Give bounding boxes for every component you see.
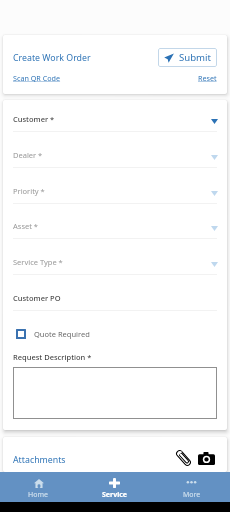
button[interactable]: Reset bbox=[198, 73, 217, 83]
button[interactable]: Submit bbox=[158, 48, 217, 67]
button[interactable]: Dealer * bbox=[13, 132, 217, 168]
button[interactable]: Customer PO bbox=[13, 275, 217, 311]
button[interactable]: Priority * bbox=[13, 168, 217, 204]
staticText: Service bbox=[102, 490, 128, 500]
button[interactable]: Attach file bbox=[175, 451, 191, 465]
button[interactable]: Home bbox=[0, 472, 76, 502]
staticText: Asset * bbox=[13, 221, 38, 231]
staticText: Customer * bbox=[13, 114, 55, 124]
button[interactable]: Service Type * bbox=[13, 239, 217, 275]
button[interactable] bbox=[13, 367, 217, 419]
button[interactable]: Customer * bbox=[13, 100, 217, 132]
staticText: More bbox=[183, 490, 201, 500]
staticText: Dealer * bbox=[13, 150, 43, 160]
staticText: Priority * bbox=[13, 186, 45, 196]
button[interactable]: Take photo bbox=[198, 451, 215, 465]
button[interactable]: Asset * bbox=[13, 204, 217, 239]
staticText: Submit bbox=[179, 51, 212, 64]
staticText: Create Work Order bbox=[13, 52, 91, 64]
button[interactable]: Scan QR Code bbox=[13, 73, 61, 83]
staticText: Customer PO bbox=[13, 293, 61, 303]
button[interactable]: More bbox=[153, 472, 230, 502]
staticText: Attachments bbox=[13, 454, 66, 466]
button[interactable]: Quote Required bbox=[16, 329, 90, 339]
staticText: Quote Required bbox=[34, 329, 90, 339]
button[interactable]: Service bbox=[76, 472, 153, 502]
staticText: Home bbox=[28, 490, 48, 500]
staticText: Service Type * bbox=[13, 257, 63, 267]
staticText: Request Description * bbox=[13, 352, 92, 362]
